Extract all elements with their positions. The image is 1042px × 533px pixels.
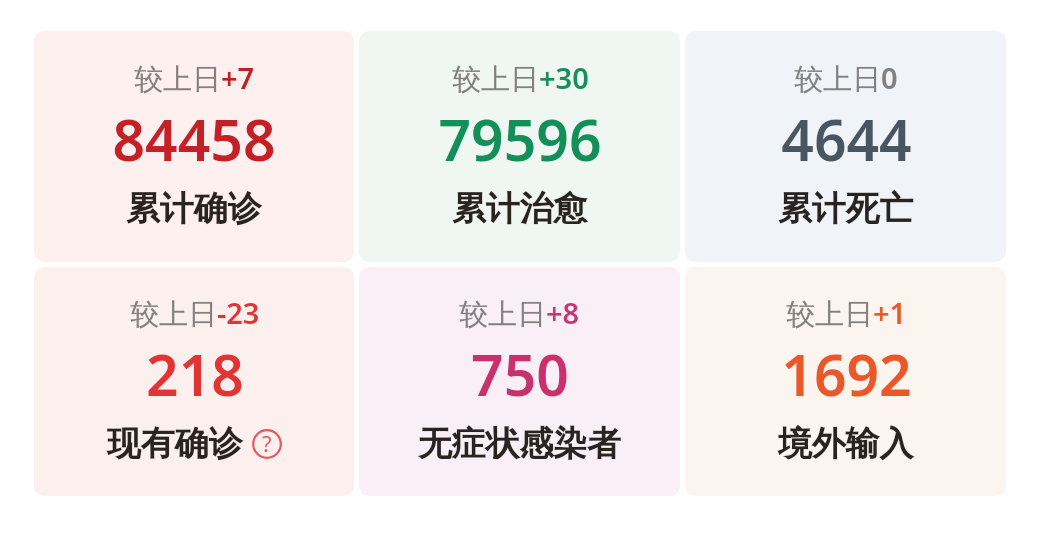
staticText: 较上日0 xyxy=(794,58,898,98)
staticText: 累计治愈 xyxy=(452,187,588,230)
button[interactable]: 较上日+30 xyxy=(359,31,680,262)
button[interactable]: 较上日+1 xyxy=(685,267,1006,496)
staticText: 750 xyxy=(471,335,569,413)
staticText: 境外输入 xyxy=(778,422,914,465)
staticText: 较上日-23 xyxy=(130,293,260,333)
button[interactable]: 较上日+8 xyxy=(359,267,680,496)
staticText: 累计死亡 xyxy=(778,187,914,230)
button[interactable]: 较上日0 xyxy=(685,31,1006,262)
staticText: ? xyxy=(262,428,272,458)
staticText: 现有确诊 xyxy=(107,422,243,465)
staticText: 79596 xyxy=(438,100,602,178)
staticText: 84458 xyxy=(112,100,276,178)
staticText: 218 xyxy=(146,335,244,413)
button[interactable]: 较上日+7 xyxy=(34,31,354,262)
staticText: 1692 xyxy=(781,335,912,413)
button[interactable]: 较上日-23 xyxy=(34,267,354,496)
staticText: 较上日+8 xyxy=(459,293,580,333)
staticText: 较上日+30 xyxy=(452,58,589,98)
staticText: 无症状感染者 xyxy=(418,422,621,465)
staticText: 较上日+7 xyxy=(134,58,255,98)
staticText: 较上日+1 xyxy=(786,293,907,333)
button[interactable]: Help about current confirmed cases xyxy=(252,429,282,459)
staticText: 4644 xyxy=(781,100,912,178)
staticText: 累计确诊 xyxy=(126,187,262,230)
